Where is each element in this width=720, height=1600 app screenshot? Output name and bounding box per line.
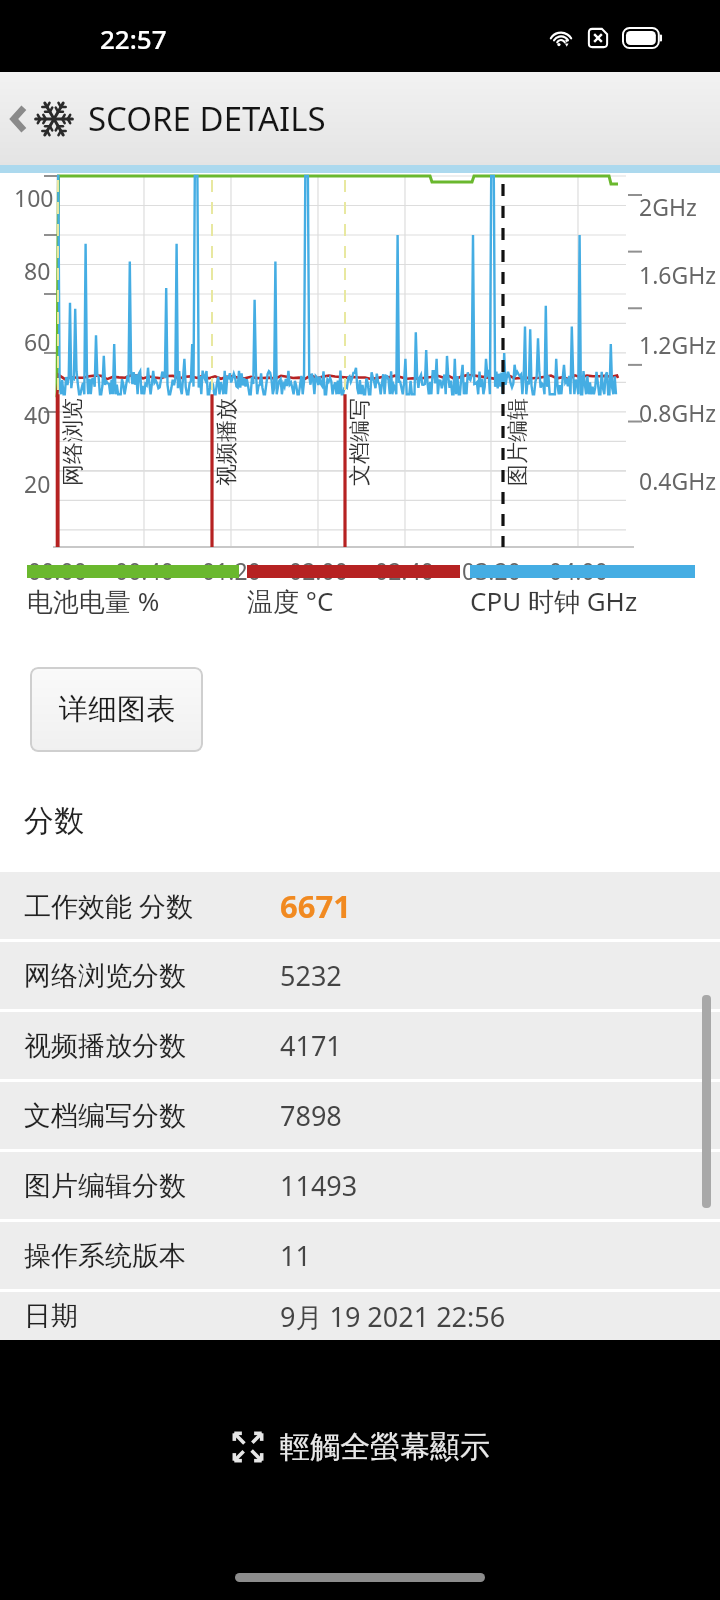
staticText: 温度 °C [247,583,334,619]
button[interactable]: 网络浏览分数 [0,942,720,1009]
staticText: 1.6GHz [639,259,717,290]
button[interactable]: 图片编辑分数 [0,1152,720,1219]
staticText: 02:40 [375,555,434,586]
staticText: 分数 [24,802,84,840]
staticText: 图片编辑分数 [24,1169,186,1203]
other: Back [8,99,30,139]
staticText: 电池电量 % [27,583,160,619]
staticText: 9月 19 2021 22:56 [280,1298,506,1335]
staticText: 视频播放 [213,398,241,486]
button[interactable]: 视频播放分数 [0,1012,720,1079]
staticText: 图片编辑 [504,398,532,486]
staticText: 日期 [24,1299,78,1333]
staticText: 20 [24,468,51,499]
staticText: 视频播放分数 [24,1029,186,1063]
staticText: 5232 [280,957,342,994]
staticText: 6671 [280,885,351,927]
staticText: 1.2GHz [639,329,717,360]
staticText: 网络浏览 [59,398,87,486]
staticText: 0.8GHz [639,397,717,428]
button[interactable]: 详细图表 [30,667,203,752]
staticText: 详细图表 [59,691,175,728]
staticText: 文档编写分数 [24,1099,186,1133]
staticText: 11493 [280,1167,358,1204]
staticText: 7898 [280,1097,342,1134]
staticText: 02:00 [289,555,348,586]
staticText: 网络浏览分数 [24,959,186,993]
staticText: 文档编写 [346,398,374,486]
staticText: 工作效能 分数 [24,887,194,924]
staticText: 00:00 [28,555,87,586]
button[interactable]: 工作效能 分数 [0,872,720,939]
staticText: 01:20 [202,555,261,586]
staticText: 11 [280,1237,311,1274]
other: Fullscreen [230,1429,266,1465]
staticText: SCORE DETAILS [88,96,326,141]
staticText: 0.4GHz [639,465,717,496]
staticText: 2GHz [639,191,697,222]
button[interactable]: Back [0,72,720,165]
staticText: 22:57 [100,21,167,56]
staticText: 輕觸全螢幕顯示 [280,1428,490,1466]
staticText: 60 [24,326,51,357]
staticText: 4171 [280,1027,342,1064]
staticText: 操作系统版本 [24,1239,186,1273]
staticText: 03:20 [462,555,521,586]
staticText: 100 [14,182,54,213]
button[interactable]: Fullscreen [230,1428,490,1466]
staticText: 40 [24,399,51,430]
staticText: 80 [24,255,51,286]
button[interactable]: 文档编写分数 [0,1082,720,1149]
staticText: 00:40 [115,555,174,586]
button[interactable]: 操作系统版本 [0,1222,720,1289]
staticText: CPU 时钟 GHz [470,583,638,619]
button[interactable]: 日期 [0,1292,720,1340]
staticText: 04:00 [549,555,608,586]
